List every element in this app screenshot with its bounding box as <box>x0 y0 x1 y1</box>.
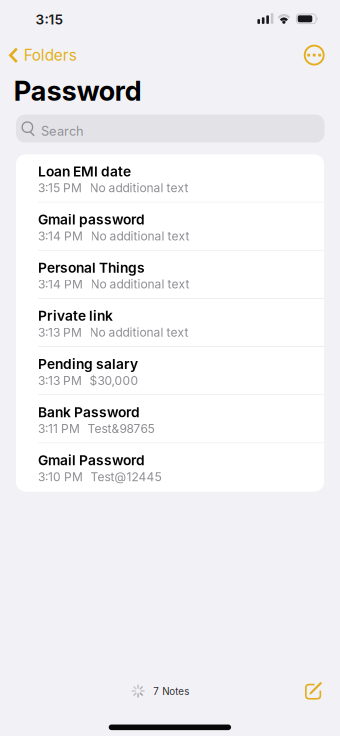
staticText: 3:15 PM <box>38 181 82 195</box>
staticText: No additional text <box>90 181 189 195</box>
staticText: Pending salary <box>38 356 138 372</box>
button[interactable]: Folders <box>0 40 85 71</box>
staticText: Loan EMI date <box>38 163 131 180</box>
staticText: 3:15 <box>36 11 64 28</box>
staticText: 7 Notes <box>153 686 189 697</box>
staticText: 3:11 PM <box>38 421 80 436</box>
button[interactable]: Search <box>16 114 324 142</box>
staticText: No additional text <box>91 229 190 243</box>
staticText: Bank Password <box>38 404 140 420</box>
staticText: 3:14 PM <box>38 277 83 291</box>
button[interactable]: Bank Password <box>16 395 324 443</box>
staticText: No additional text <box>90 325 189 340</box>
button[interactable]: Gmail password <box>16 203 324 251</box>
staticText: 3:13 PM <box>38 325 82 340</box>
staticText: Test&98765 <box>88 421 155 436</box>
staticText: Personal Things <box>38 259 145 276</box>
staticText: 3:14 PM <box>38 229 83 243</box>
button[interactable]: Pending salary <box>16 347 324 395</box>
staticText: Test@12445 <box>91 470 162 484</box>
button[interactable]: More <box>297 38 332 73</box>
staticText: Search <box>41 123 84 139</box>
button[interactable]: New Note <box>297 674 331 708</box>
staticText: 3:10 PM <box>38 470 83 484</box>
button[interactable]: Private link <box>16 299 324 347</box>
staticText: No additional text <box>91 277 190 291</box>
button[interactable]: Gmail Password <box>16 443 324 491</box>
button[interactable]: Personal Things <box>16 251 324 299</box>
staticText: 3:13 PM <box>38 373 82 388</box>
staticText: Password <box>14 74 142 107</box>
staticText: $30,000 <box>90 373 139 388</box>
staticText: Private link <box>38 307 113 324</box>
staticText: Folders <box>24 46 77 65</box>
staticText: Gmail password <box>38 211 145 228</box>
staticText: Gmail Password <box>38 452 145 469</box>
button[interactable]: Loan EMI date <box>16 154 324 203</box>
